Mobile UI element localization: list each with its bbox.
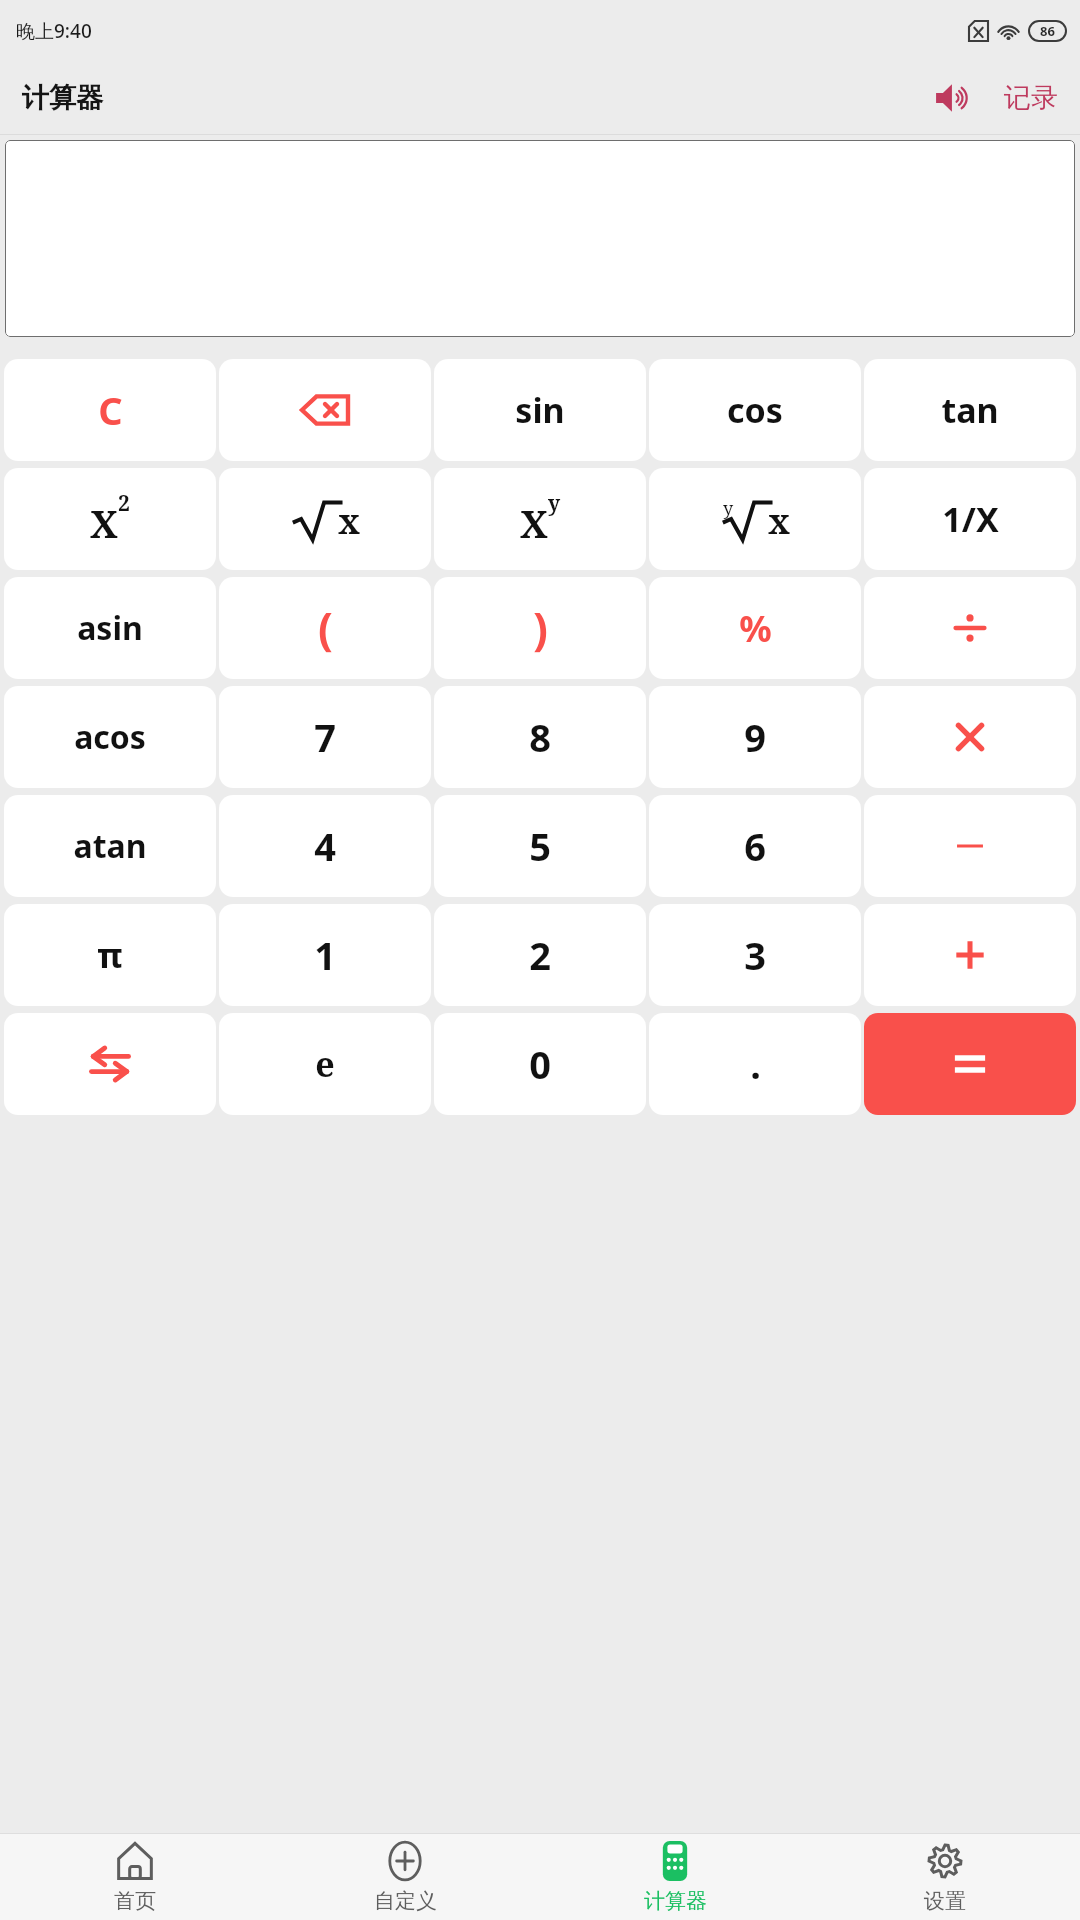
button[interactable]: e [219,1013,431,1115]
staticText: . [750,1038,761,1090]
button[interactable]: 6 [649,795,861,897]
staticText: cos [727,387,783,433]
staticText: ) [533,598,548,658]
other: Divide [864,577,1076,679]
button[interactable]: X [4,468,216,570]
button[interactable]: % [649,577,861,679]
button[interactable]: asin [4,577,216,679]
staticText: 1/X [942,496,999,542]
staticText: tan [941,387,999,433]
staticText: 7 [314,711,336,763]
staticText: 2 [529,929,551,981]
staticText: 9 [744,711,766,763]
button[interactable]: Divide [864,577,1076,679]
other: Plus [864,904,1076,1006]
staticText: asin [77,606,143,650]
button[interactable]: Plus [864,904,1076,1006]
staticText: sin [515,387,565,433]
staticText: y [548,489,561,518]
staticText: 5 [529,820,551,872]
button[interactable]: 1/X [864,468,1076,570]
button[interactable]: 自定义 [270,1834,540,1920]
button[interactable]: . [649,1013,861,1115]
button[interactable]: tan [864,359,1076,461]
staticText: 2 [118,489,130,518]
button[interactable]: Equals [864,1013,1076,1115]
staticText: 0 [529,1038,551,1090]
button[interactable]: 7 [219,686,431,788]
other: Equals [864,1013,1076,1115]
staticText: 4 [314,820,336,872]
staticText: x [338,498,360,544]
button[interactable]: ) [434,577,646,679]
staticText: x [768,498,790,544]
staticText: ( [318,598,333,658]
staticText: e [315,1041,335,1087]
other: Minus [864,795,1076,897]
button[interactable]: 计算器 [540,1834,810,1920]
staticText: 3 [744,929,766,981]
staticText: 8 [529,711,551,763]
staticText: y [723,496,734,521]
button[interactable]: Multiply [864,686,1076,788]
staticText: 自定义 [374,1888,437,1914]
staticText: π [97,932,123,978]
button[interactable]: sin [434,359,646,461]
button[interactable]: ( [219,577,431,679]
button[interactable] [5,140,1075,337]
staticText: 1 [314,929,336,981]
button[interactable]: 8 [434,686,646,788]
button[interactable]: Sound [924,69,982,127]
staticText: 86 [1040,22,1055,40]
button[interactable]: cos [649,359,861,461]
button[interactable]: x [219,468,431,570]
button[interactable]: Minus [864,795,1076,897]
button[interactable]: acos [4,686,216,788]
button[interactable]: 9 [649,686,861,788]
button[interactable]: 4 [219,795,431,897]
button[interactable]: atan [4,795,216,897]
staticText: % [739,604,772,653]
staticText: atan [73,824,147,868]
staticText: 记录 [1004,81,1058,115]
button[interactable]: 5 [434,795,646,897]
button[interactable]: 设置 [810,1834,1080,1920]
staticText: X [90,497,118,549]
button[interactable]: y [649,468,861,570]
button[interactable]: X [434,468,646,570]
staticText: acos [74,715,146,759]
staticText: C [98,384,123,436]
button[interactable]: Swap [4,1013,216,1115]
other: Swap [4,1013,216,1115]
button[interactable]: Backspace [219,359,431,461]
button[interactable]: 首页 [0,1834,270,1920]
staticText: 6 [744,820,766,872]
button[interactable]: 3 [649,904,861,1006]
other: Multiply [864,686,1076,788]
staticText: 计算器 [22,81,103,115]
staticText: 计算器 [644,1888,707,1914]
button[interactable]: 0 [434,1013,646,1115]
button[interactable]: C [4,359,216,461]
button[interactable]: 2 [434,904,646,1006]
other: Backspace [219,359,431,461]
staticText: 首页 [114,1888,156,1914]
button[interactable]: 记录 [982,69,1080,127]
staticText: 晚上9:40 [16,18,92,44]
button[interactable]: π [4,904,216,1006]
staticText: X [520,497,548,549]
button[interactable]: 1 [219,904,431,1006]
staticText: 设置 [924,1888,966,1914]
